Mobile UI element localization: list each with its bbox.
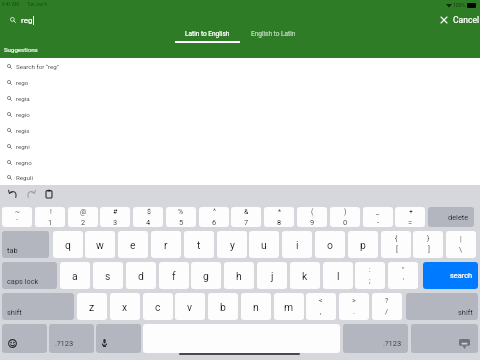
button[interactable]: Paste	[44, 189, 54, 199]
staticText: "	[402, 266, 405, 274]
button[interactable]: regis	[0, 122, 480, 138]
button[interactable]: "	[388, 262, 418, 289]
button[interactable]: tab	[2, 231, 49, 258]
button[interactable]: j	[257, 262, 287, 289]
button[interactable]: Hide keyboard	[411, 324, 478, 353]
button[interactable]: %	[166, 207, 196, 227]
staticText: .?123	[383, 339, 402, 348]
button[interactable]: Search for “reg”	[0, 58, 480, 74]
button[interactable]: search	[423, 262, 478, 289]
button[interactable]: )	[330, 207, 360, 227]
button[interactable]: g	[191, 262, 221, 289]
staticText: \	[459, 245, 463, 254]
button[interactable]: *	[264, 207, 294, 227]
staticText: s	[105, 270, 111, 282]
staticText: j	[271, 270, 274, 282]
button[interactable]: i	[282, 231, 312, 258]
staticText: reg	[21, 16, 33, 25]
staticText: z	[89, 301, 95, 313]
button[interactable]: +	[395, 207, 425, 227]
button[interactable]: {	[381, 231, 411, 258]
button[interactable]: #	[100, 207, 130, 227]
button[interactable]: rego	[0, 74, 480, 90]
staticText: 100%	[453, 2, 466, 8]
button[interactable]: regio	[0, 106, 480, 122]
staticText: tab	[7, 246, 18, 255]
button[interactable]: &	[231, 207, 261, 227]
button[interactable]: u	[249, 231, 279, 258]
button[interactable]: o	[315, 231, 345, 258]
button[interactable]: regno	[0, 154, 480, 170]
button[interactable]: e	[118, 231, 148, 258]
button[interactable]: k	[290, 262, 320, 289]
button[interactable]: x	[110, 293, 140, 320]
button[interactable]: <	[306, 293, 336, 320]
staticText: Latin to English	[185, 30, 230, 38]
staticText: 8	[277, 218, 282, 227]
staticText: delete	[448, 213, 469, 222]
button[interactable]: m	[274, 293, 304, 320]
button[interactable]: }	[413, 231, 443, 258]
button[interactable]: English to Latin	[240, 30, 306, 38]
button[interactable]: w	[85, 231, 115, 258]
button[interactable]: s	[93, 262, 123, 289]
button[interactable]: >	[339, 293, 369, 320]
staticText: h	[236, 270, 242, 282]
button[interactable]: q	[53, 231, 83, 258]
staticText: English to Latin	[251, 30, 296, 38]
button[interactable]: r	[151, 231, 181, 258]
button[interactable]: .?123	[49, 324, 94, 353]
button[interactable]: shift	[2, 293, 74, 320]
staticText: o	[327, 239, 333, 251]
button[interactable]: @	[68, 207, 98, 227]
button[interactable]: caps lock	[2, 262, 57, 289]
button[interactable]: Redo	[26, 189, 36, 199]
button[interactable]: p	[348, 231, 378, 258]
button[interactable]: regia	[0, 90, 480, 106]
button[interactable]: ^	[199, 207, 229, 227]
button[interactable]: Latin to English	[175, 30, 240, 43]
staticText: Reguli	[16, 174, 33, 181]
button[interactable]: $	[133, 207, 163, 227]
button[interactable]: v	[175, 293, 205, 320]
button[interactable]: a	[60, 262, 90, 289]
button[interactable]: b	[208, 293, 238, 320]
staticText: shift	[458, 308, 473, 317]
staticText: search	[450, 271, 473, 280]
button[interactable]: ~	[2, 207, 32, 227]
button[interactable]: c	[143, 293, 173, 320]
button[interactable]: .?123	[343, 324, 408, 353]
button[interactable]: Cancel	[435, 12, 480, 28]
button[interactable]: Emoji	[2, 324, 47, 353]
button[interactable]: delete	[428, 207, 474, 227]
button[interactable]: Reguli	[0, 170, 480, 185]
button[interactable]: :	[355, 262, 385, 289]
button[interactable]: h	[224, 262, 254, 289]
staticText: )	[344, 208, 347, 216]
staticText: d	[138, 270, 144, 282]
button[interactable]: f	[159, 262, 189, 289]
staticText: ?	[385, 297, 389, 305]
button[interactable]: regni	[0, 138, 480, 154]
button[interactable]: !	[35, 207, 65, 227]
staticText: c	[155, 301, 161, 313]
button[interactable]: ?	[372, 293, 402, 320]
button[interactable]: z	[77, 293, 107, 320]
staticText: :	[369, 266, 371, 274]
button[interactable]: _	[363, 207, 393, 227]
button[interactable]: Dictate	[96, 324, 141, 353]
button[interactable]: l	[323, 262, 353, 289]
button[interactable]: (	[297, 207, 327, 227]
staticText: regni	[16, 143, 30, 150]
button[interactable]: t	[184, 231, 214, 258]
button[interactable]: shift	[406, 293, 478, 320]
staticText: f	[172, 270, 176, 282]
button[interactable]: |	[446, 231, 476, 258]
button[interactable]: Undo	[8, 189, 18, 199]
button[interactable]: y	[217, 231, 247, 258]
button[interactable]: d	[126, 262, 156, 289]
button[interactable]: n	[241, 293, 271, 320]
staticText: Cancel	[453, 15, 480, 25]
staticText: '	[403, 276, 405, 285]
